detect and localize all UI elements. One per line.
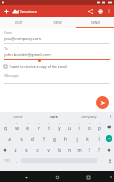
button[interactable]: ?123: [0, 155, 13, 166]
staticText: d: [31, 136, 34, 142]
button[interactable]: 4: [33, 120, 44, 133]
staticText: 2: [16, 122, 18, 125]
button[interactable]: g: [49, 133, 60, 144]
button[interactable]: h: [60, 133, 71, 144]
staticText: c: [36, 147, 39, 153]
button[interactable]: f: [38, 133, 49, 144]
staticText: w: [15, 125, 19, 131]
button[interactable]: z: [10, 144, 21, 155]
button[interactable]: Home: [52, 172, 62, 182]
button[interactable]: 1: [0, 120, 11, 133]
staticText: s: [20, 136, 23, 142]
button[interactable]: d: [27, 133, 38, 144]
staticText: From: [4, 31, 12, 35]
button[interactable]: 2: [11, 120, 22, 133]
staticText: 3: [27, 122, 29, 125]
button[interactable]: 9: [84, 120, 94, 133]
button[interactable]: v: [43, 144, 54, 155]
button[interactable]: !: [84, 144, 94, 155]
button[interactable]: EDIT: [0, 17, 38, 28]
button[interactable]: More options: [105, 7, 113, 15]
staticText: Message: [4, 73, 19, 78]
staticText: b: [58, 147, 61, 153]
button[interactable]: company: [71, 112, 106, 120]
staticText: v: [47, 147, 50, 153]
staticText: p: [98, 125, 101, 131]
staticText: 7: [69, 122, 71, 125]
staticText: q: [4, 125, 7, 131]
button[interactable]: ?: [94, 144, 104, 155]
button[interactable]: s: [15, 133, 27, 144]
button[interactable]: Shift: [104, 144, 114, 155]
button[interactable]: 6: [54, 120, 64, 133]
button[interactable]: k: [82, 133, 93, 144]
button[interactable]: c: [32, 144, 43, 155]
button[interactable]: x: [21, 144, 32, 155]
button[interactable]: come: [0, 112, 36, 120]
staticText: VIEW: [53, 20, 62, 25]
button[interactable]: j: [71, 133, 82, 144]
staticText: ?123: [4, 159, 10, 163]
button[interactable]: More suggestions: [106, 112, 114, 120]
staticText: Invoices: [20, 9, 37, 15]
staticText: come: [13, 114, 23, 119]
button[interactable]: 5: [44, 120, 54, 133]
button[interactable]: Back: [21, 172, 31, 182]
button[interactable]: ,: [13, 155, 20, 166]
button[interactable]: Backspace: [104, 120, 114, 133]
staticText: !: [88, 147, 90, 153]
button[interactable]: 0: [94, 120, 104, 133]
staticText: 0: [99, 122, 101, 125]
button[interactable]: b: [54, 144, 64, 155]
staticText: i: [78, 125, 80, 131]
button[interactable]: Shift: [0, 144, 10, 155]
staticText: To: [4, 47, 8, 51]
staticText: core: [50, 114, 58, 119]
button[interactable]: m: [74, 144, 84, 155]
button[interactable]: l: [93, 133, 104, 144]
button[interactable]: Share: [85, 6, 95, 16]
staticText: n: [68, 147, 71, 153]
button[interactable]: n: [64, 144, 74, 155]
staticText: g: [53, 136, 56, 142]
staticText: ?: [98, 147, 100, 153]
button[interactable]: 8: [74, 120, 84, 133]
button[interactable]: Send: [96, 96, 109, 109]
button[interactable]: a: [3, 133, 15, 144]
button[interactable]: VIEW: [38, 17, 76, 28]
button[interactable]: SEND: [76, 17, 114, 28]
staticText: john.borden@gmail.com: [4, 52, 51, 57]
button[interactable]: 3: [22, 120, 33, 133]
staticText: f: [43, 136, 45, 142]
staticText: 5: [48, 122, 50, 125]
staticText: SEND: [91, 20, 100, 25]
button[interactable]: core: [36, 112, 71, 120]
staticText: t: [48, 125, 50, 131]
button[interactable]: 7: [64, 120, 74, 133]
staticText: l: [98, 136, 100, 142]
button[interactable]: Enter: [106, 135, 112, 142]
staticText: e: [26, 125, 29, 131]
staticText: k: [86, 136, 89, 142]
staticText: EDIT: [15, 20, 23, 25]
staticText: o: [88, 125, 91, 131]
staticText: 8: [78, 122, 80, 125]
button[interactable]: Voice input: [105, 155, 114, 166]
staticText: j: [76, 136, 78, 142]
staticText: you@company.com: [4, 36, 41, 41]
staticText: I want to receive a copy of the email: [9, 64, 67, 69]
staticText: 9: [89, 122, 91, 125]
staticText: a: [8, 136, 11, 142]
staticText: z: [14, 147, 17, 153]
button[interactable]: Recents: [83, 172, 93, 182]
staticText: ,: [16, 158, 18, 163]
staticText: h: [64, 136, 67, 142]
button[interactable]: I want to receive a copy of the email: [4, 63, 110, 69]
staticText: u: [68, 125, 71, 131]
button[interactable]: Print: [95, 6, 105, 16]
staticText: r: [38, 125, 40, 131]
staticText: 4: [38, 122, 40, 125]
button[interactable]: New: [2, 7, 11, 16]
